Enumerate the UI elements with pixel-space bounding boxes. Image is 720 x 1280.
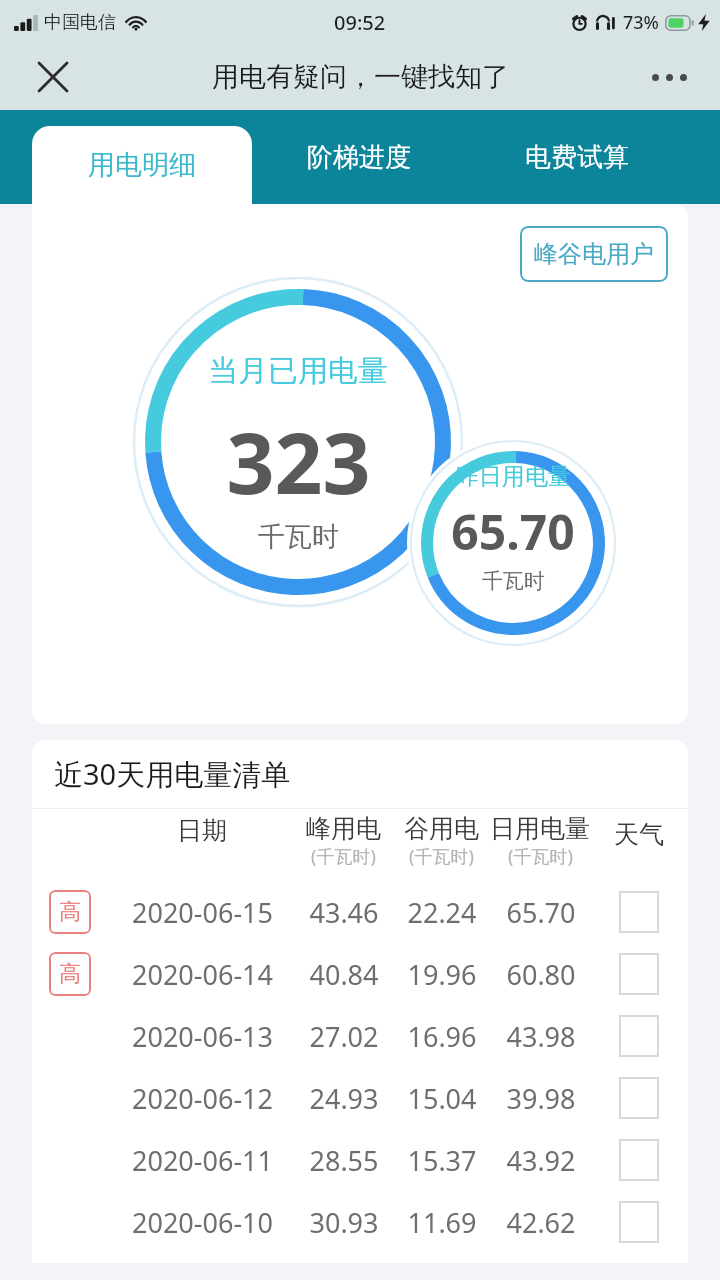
staticText: 65.70 <box>506 894 576 931</box>
staticText: 42.62 <box>506 1204 576 1241</box>
staticText: 60.80 <box>506 956 576 993</box>
staticText: 09:52 <box>334 9 386 36</box>
staticText: 40.84 <box>309 956 379 993</box>
staticText: 日用电量 <box>490 813 590 844</box>
staticText: 323 <box>226 404 371 518</box>
staticText: 用电明细 <box>88 148 196 182</box>
staticText: 千瓦时 <box>258 520 339 554</box>
staticText: 当月已用电量 <box>208 352 388 390</box>
staticText: 近30天用电量清单 <box>54 754 291 794</box>
button[interactable]: 峰谷电用户 <box>520 226 668 282</box>
staticText: 16.96 <box>407 1018 477 1055</box>
staticText: (千瓦时) <box>409 844 474 869</box>
button[interactable]: 高 <box>32 881 688 943</box>
staticText: 15.37 <box>407 1142 477 1179</box>
staticText: 峰谷电用户 <box>534 239 654 269</box>
staticText: 2020-06-15 <box>132 894 273 931</box>
staticText: 日期 <box>177 815 227 846</box>
staticText: 27.02 <box>309 1018 379 1055</box>
button[interactable]: 高 <box>32 943 688 1005</box>
staticText: 11.69 <box>407 1204 477 1241</box>
staticText: 昨日用电量 <box>456 462 571 491</box>
button[interactable]: 阶梯进度 <box>252 110 466 204</box>
button[interactable]: 关闭 <box>30 54 76 100</box>
staticText: (千瓦时) <box>508 844 573 869</box>
staticText: 中国电信 <box>44 11 116 34</box>
staticText: 千瓦时 <box>482 568 545 594</box>
staticText: 28.55 <box>309 1142 379 1179</box>
staticText: 43.92 <box>506 1142 576 1179</box>
staticText: 2020-06-10 <box>132 1204 273 1241</box>
staticText: 用电有疑问，一键找知了 <box>212 60 509 94</box>
staticText: 电费试算 <box>525 141 629 174</box>
staticText: 高 <box>59 960 81 988</box>
staticText: 15.04 <box>407 1080 477 1117</box>
button[interactable]: 2020-06-12 <box>32 1067 688 1129</box>
staticText: 2020-06-14 <box>132 956 273 993</box>
staticText: 谷用电 <box>404 813 479 844</box>
staticText: 30.93 <box>309 1204 379 1241</box>
button[interactable]: 2020-06-13 <box>32 1005 688 1067</box>
staticText: 高 <box>59 898 81 926</box>
staticText: 24.93 <box>309 1080 379 1117</box>
staticText: (千瓦时) <box>311 844 376 869</box>
button[interactable]: 用电明细 <box>32 126 252 204</box>
staticText: 43.98 <box>506 1018 576 1055</box>
staticText: 39.98 <box>506 1080 576 1117</box>
button[interactable]: 2020-06-11 <box>32 1129 688 1191</box>
staticText: 19.96 <box>407 956 477 993</box>
button[interactable]: 2020-06-10 <box>32 1191 688 1253</box>
button[interactable]: 更多 <box>644 57 694 97</box>
staticText: 2020-06-11 <box>132 1142 273 1179</box>
staticText: 阶梯进度 <box>307 141 411 174</box>
staticText: 2020-06-13 <box>132 1018 273 1055</box>
staticText: 22.24 <box>407 894 477 931</box>
staticText: 2020-06-12 <box>132 1080 273 1117</box>
staticText: 峰用电 <box>306 813 381 844</box>
staticText: 65.70 <box>451 499 575 564</box>
button[interactable]: 电费试算 <box>466 110 688 204</box>
staticText: 43.46 <box>309 894 379 931</box>
staticText: 73% <box>623 10 659 35</box>
staticText: 天气 <box>614 819 664 850</box>
